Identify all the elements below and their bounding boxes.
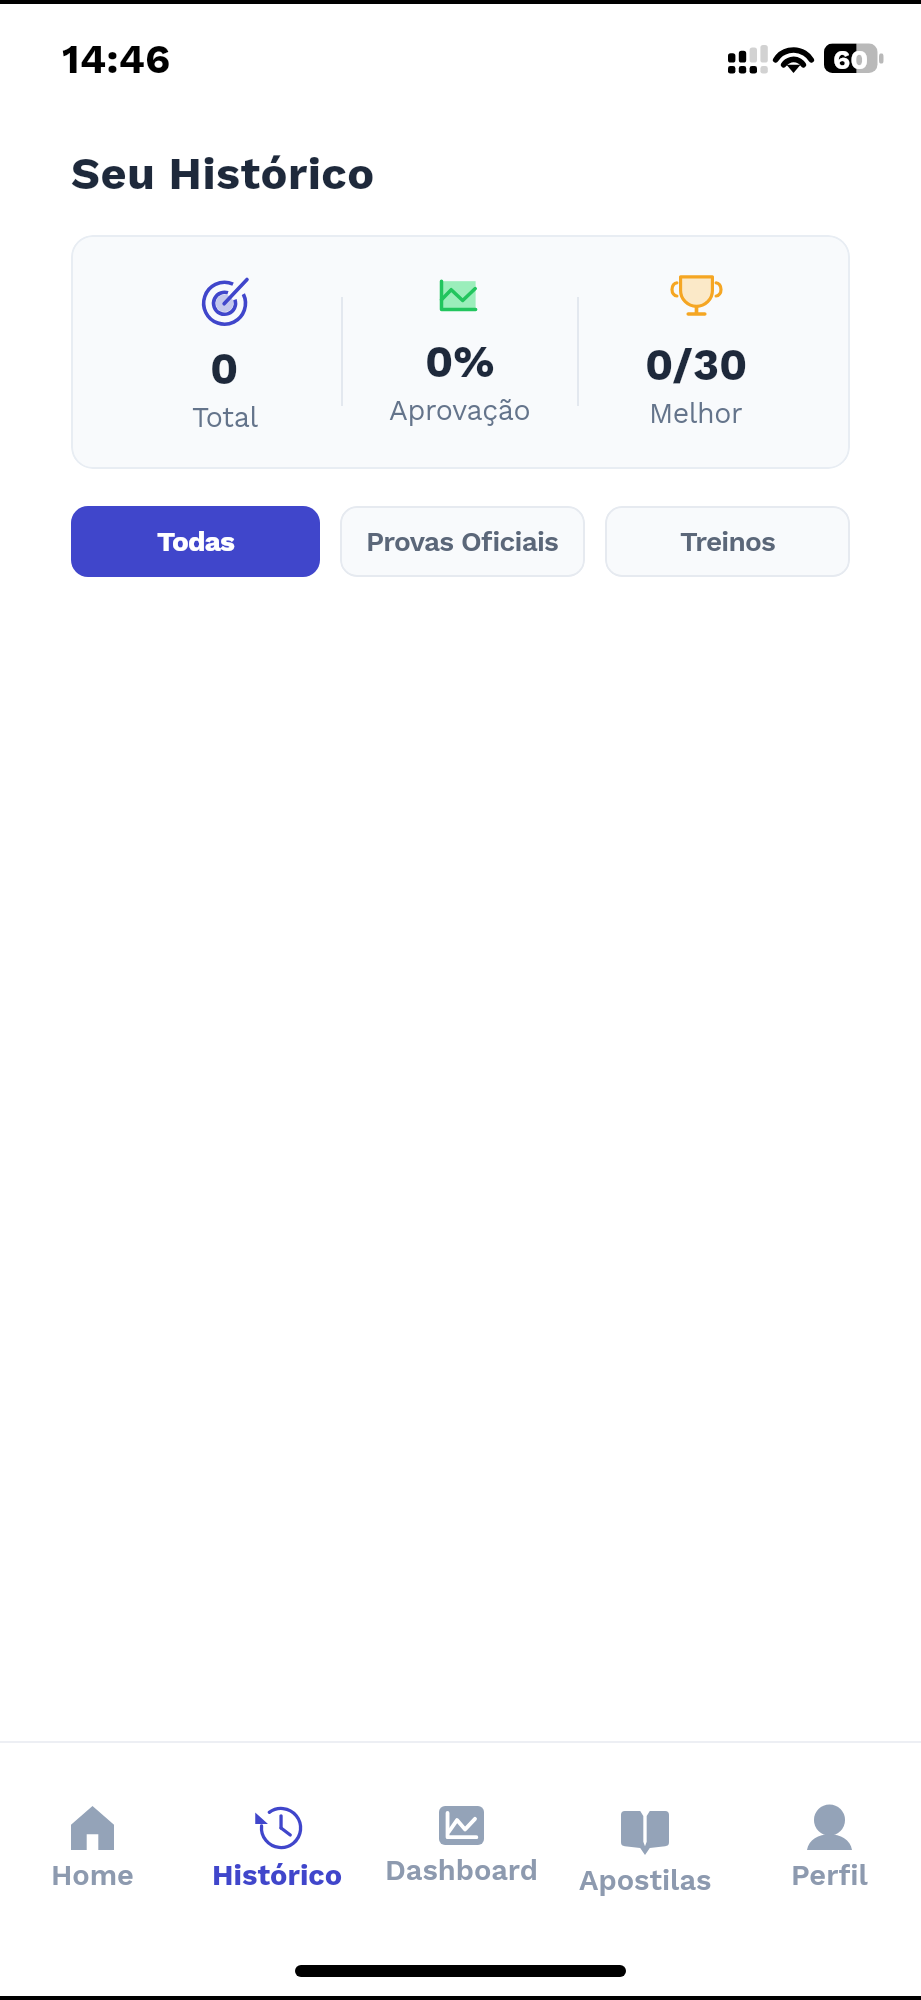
button[interactable]: Perfil bbox=[737, 1743, 921, 1899]
button[interactable]: Treinos bbox=[605, 506, 850, 577]
staticText: Total bbox=[192, 400, 258, 433]
staticText: 0 bbox=[210, 343, 239, 395]
staticText: Melhor bbox=[649, 396, 743, 429]
staticText: Home bbox=[51, 1858, 134, 1892]
staticText: 0% bbox=[425, 336, 495, 388]
button[interactable]: Histórico bbox=[185, 1743, 369, 1899]
staticText: Treinos bbox=[680, 525, 775, 558]
button[interactable]: Dashboard bbox=[369, 1743, 553, 1899]
button[interactable]: Todas bbox=[71, 506, 320, 577]
button[interactable]: Provas Oficiais bbox=[340, 506, 585, 577]
staticText: Provas Oficiais bbox=[366, 525, 559, 558]
staticText: Aprovação bbox=[389, 393, 531, 426]
button[interactable]: Apostilas bbox=[553, 1743, 737, 1899]
staticText: 0/30 bbox=[645, 339, 748, 391]
staticText: Todas bbox=[157, 525, 235, 558]
staticText: Apostilas bbox=[579, 1863, 712, 1897]
staticText: Perfil bbox=[791, 1858, 868, 1892]
staticText: 60 bbox=[833, 43, 869, 73]
staticText: Dashboard bbox=[385, 1853, 538, 1887]
staticText: Histórico bbox=[212, 1858, 343, 1892]
staticText: Seu Histórico bbox=[71, 147, 375, 200]
button[interactable]: Home bbox=[0, 1743, 185, 1899]
staticText: 14:46 bbox=[62, 35, 171, 83]
